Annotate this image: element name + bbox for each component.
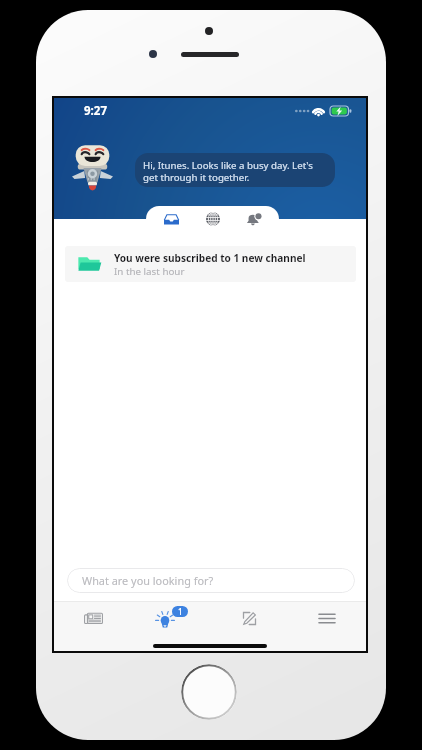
staticText: 1 [178,606,183,617]
staticText: In the last hour [114,265,185,278]
button[interactable]: You were subscribed to 1 new channel [65,246,356,282]
staticText: You were subscribed to 1 new channel [114,251,306,265]
button[interactable]: What are you looking for? [67,568,355,593]
button[interactable]: Inbox [155,206,187,232]
staticText: 9:27 [84,103,107,119]
staticText: Hi, Itunes. Looks like a busy day. Let's… [143,159,327,184]
button[interactable]: Notifications [238,206,270,232]
staticText: What are you looking for? [82,573,214,588]
button[interactable]: Compose [210,602,288,634]
button[interactable]: Home [181,664,237,720]
button[interactable]: Discover [197,206,229,232]
button[interactable]: Menu [288,602,366,634]
button[interactable]: Ideas, 1 new [132,602,210,634]
button[interactable]: News [54,602,132,634]
